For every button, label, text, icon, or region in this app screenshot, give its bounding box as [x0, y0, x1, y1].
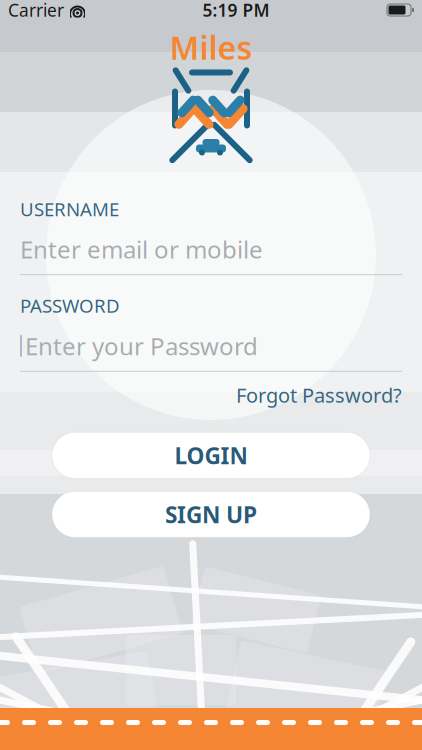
staticText: SIGN UP	[165, 499, 257, 529]
staticText: 5:19 PM	[202, 0, 269, 21]
staticText: Forgot Password?	[236, 382, 402, 408]
staticText: Miles	[169, 26, 252, 68]
staticText: USERNAME	[20, 196, 119, 221]
staticText: Enter email or mobile	[20, 233, 263, 265]
staticText: Carrier	[8, 0, 64, 21]
button[interactable]: SIGN UP	[52, 491, 370, 537]
button[interactable]: LOGIN	[52, 432, 370, 478]
staticText: LOGIN	[174, 440, 247, 470]
staticText: Enter your Password	[25, 330, 258, 362]
button[interactable]: Forgot Password?	[236, 382, 402, 408]
staticText: PASSWORD	[20, 293, 120, 318]
